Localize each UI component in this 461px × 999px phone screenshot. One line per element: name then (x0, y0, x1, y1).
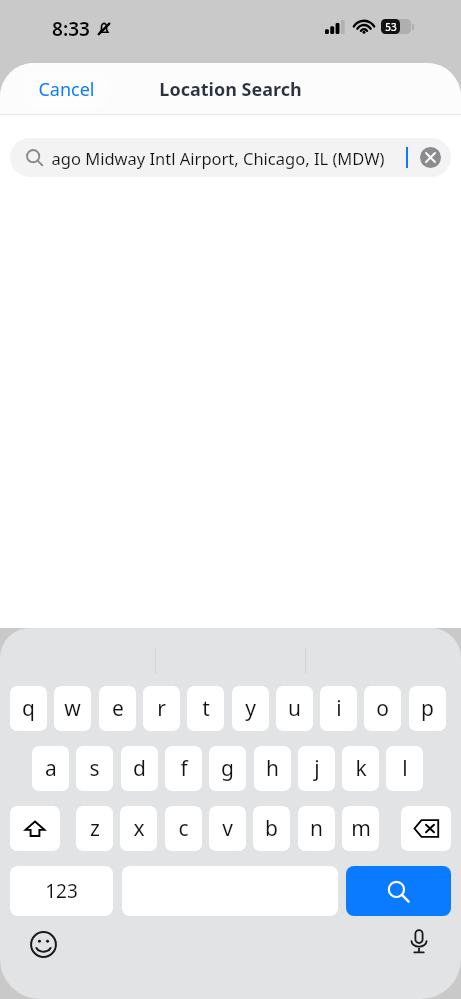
button[interactable]: Emoji (27, 928, 59, 960)
button[interactable]: i (320, 686, 357, 731)
staticText: g (221, 754, 234, 783)
staticText: p (421, 694, 434, 723)
button[interactable]: Cancel (22, 70, 111, 109)
button[interactable]: e (99, 686, 136, 731)
button[interactable]: p (409, 686, 446, 731)
button[interactable]: w (54, 686, 91, 731)
staticText: f (180, 754, 188, 783)
button[interactable]: Clear text (420, 147, 441, 168)
staticText: q (22, 694, 35, 723)
button[interactable]: 123 (10, 866, 113, 916)
staticText: v (222, 814, 233, 843)
staticText: 8:33 (52, 16, 90, 42)
button[interactable]: r (143, 686, 180, 731)
staticText: b (265, 814, 278, 843)
button[interactable]: o (364, 686, 401, 731)
button[interactable]: Search (346, 866, 451, 916)
staticText: e (112, 694, 124, 723)
staticText: 123 (45, 878, 78, 904)
staticText: z (90, 814, 100, 843)
button[interactable]: ago Midway Intl Airport, Chicago, IL (MD… (10, 138, 451, 177)
button[interactable]: Dictation (403, 926, 435, 958)
button[interactable]: j (298, 746, 335, 791)
button[interactable]: k (342, 746, 379, 791)
button[interactable]: u (276, 686, 313, 731)
staticText: c (178, 814, 189, 843)
staticText: d (133, 754, 146, 783)
button[interactable]: q (10, 686, 47, 731)
staticText: u (288, 694, 301, 723)
button[interactable]: s (76, 746, 113, 791)
button[interactable]: y (232, 686, 269, 731)
button[interactable]: x (120, 806, 157, 851)
button[interactable]: m (342, 806, 379, 851)
staticText: l (402, 754, 408, 783)
staticText: x (133, 814, 145, 843)
button[interactable]: d (121, 746, 158, 791)
staticText: h (266, 754, 279, 783)
staticText: Location Search (159, 77, 302, 102)
staticText: o (376, 694, 389, 723)
button[interactable]: v (209, 806, 246, 851)
button[interactable]: b (253, 806, 290, 851)
staticText: m (351, 814, 371, 843)
staticText: Cancel (38, 77, 95, 102)
button[interactable]: Shift (10, 806, 60, 851)
button[interactable]: g (209, 746, 246, 791)
button[interactable]: f (165, 746, 202, 791)
staticText: s (89, 754, 100, 783)
staticText: j (314, 754, 320, 783)
button[interactable]: z (76, 806, 113, 851)
staticText: n (310, 814, 323, 843)
staticText: a (45, 754, 57, 783)
staticText: t (202, 694, 210, 723)
button[interactable]: t (187, 686, 224, 731)
staticText: y (245, 694, 256, 723)
staticText: w (64, 694, 81, 723)
staticText: r (157, 694, 166, 723)
staticText: i (336, 694, 342, 723)
button[interactable]: a (32, 746, 69, 791)
staticText: k (355, 754, 367, 783)
staticText: ago Midway Intl Airport, Chicago, IL (MD… (51, 147, 385, 169)
button[interactable]: l (386, 746, 423, 791)
button[interactable]: Backspace (401, 806, 451, 851)
staticText: 53 (385, 20, 397, 34)
button[interactable]: h (254, 746, 291, 791)
button[interactable]: c (165, 806, 202, 851)
button[interactable]: n (298, 806, 335, 851)
